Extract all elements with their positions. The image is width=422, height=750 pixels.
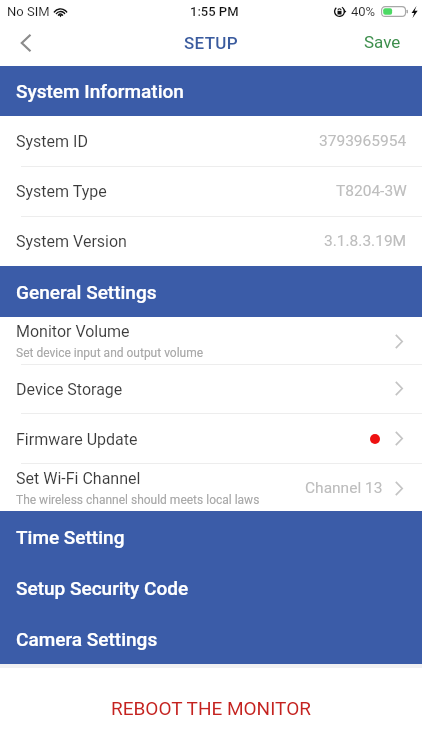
- staticText: 40%: [351, 4, 376, 19]
- staticText: Device Storage: [16, 380, 123, 399]
- staticText: No SIM: [7, 4, 50, 19]
- staticText: System ID: [16, 132, 88, 151]
- staticText: Save: [364, 32, 401, 52]
- staticText: Monitor Volume: [16, 322, 130, 341]
- button[interactable]: Monitor Volume: [0, 317, 422, 365]
- button[interactable]: System Type: [0, 166, 422, 216]
- button[interactable]: General Settings: [0, 266, 422, 317]
- button[interactable]: Firmware Update: [0, 413, 422, 463]
- staticText: General Settings: [16, 281, 157, 303]
- button[interactable]: Time Setting: [0, 511, 422, 562]
- button[interactable]: Set Wi-Fi Channel: [0, 464, 422, 512]
- button[interactable]: REBOOT THE MONITOR: [0, 692, 422, 724]
- staticText: SETUP: [184, 33, 238, 53]
- staticText: Set device input and output volume: [16, 346, 204, 360]
- staticText: Setup Security Code: [16, 577, 189, 599]
- staticText: System Type: [16, 182, 107, 201]
- staticText: Set Wi-Fi Channel: [16, 469, 141, 488]
- button[interactable]: Back: [10, 27, 42, 59]
- button[interactable]: Camera Settings: [0, 613, 422, 664]
- button[interactable]: Save: [364, 32, 401, 52]
- staticText: T8204-3W: [336, 182, 407, 200]
- staticText: System Version: [16, 232, 127, 251]
- staticText: System Information: [16, 80, 184, 102]
- button[interactable]: System Version: [0, 216, 422, 266]
- button[interactable]: System Information: [0, 66, 422, 116]
- staticText: 3.1.8.3.19M: [324, 232, 407, 250]
- staticText: Channel 13: [305, 479, 383, 497]
- staticText: Time Setting: [16, 526, 125, 548]
- staticText: Firmware Update: [16, 430, 138, 449]
- staticText: 1:55 PM: [190, 4, 239, 19]
- staticText: REBOOT THE MONITOR: [111, 697, 311, 719]
- staticText: The wireless channel should meets local …: [16, 493, 260, 507]
- button[interactable]: Device Storage: [0, 364, 422, 413]
- staticText: Camera Settings: [16, 628, 158, 650]
- button[interactable]: System ID: [0, 116, 422, 166]
- staticText: 3793965954: [319, 132, 407, 150]
- button[interactable]: Setup Security Code: [0, 562, 422, 613]
